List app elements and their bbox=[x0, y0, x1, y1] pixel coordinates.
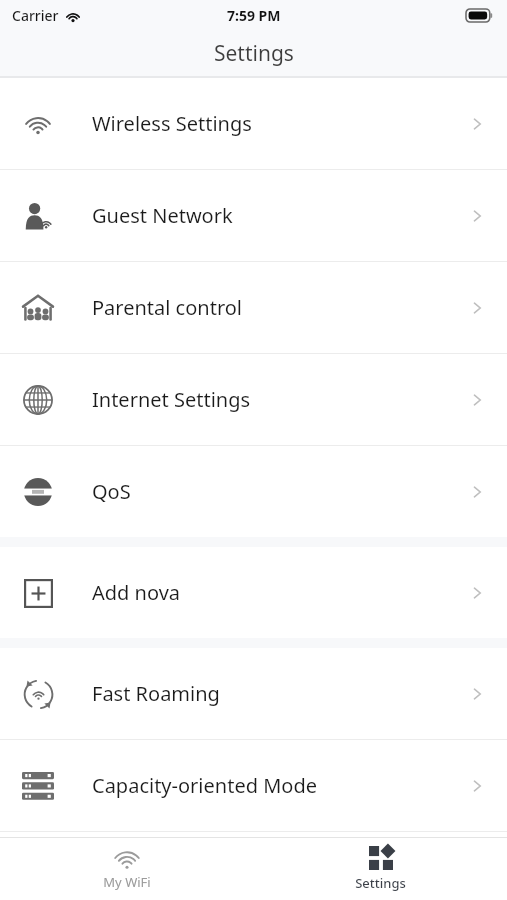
staticText: Settings bbox=[214, 39, 294, 68]
button[interactable]: My WiFi bbox=[0, 838, 253, 900]
staticText: Fast Roaming bbox=[92, 680, 469, 707]
staticText: Add nova bbox=[92, 579, 469, 606]
button[interactable]: Wireless Settings bbox=[0, 78, 507, 169]
button[interactable]: Guest Network bbox=[0, 170, 507, 261]
staticText: 7:59 PM bbox=[227, 6, 281, 25]
button[interactable]: Parental control bbox=[0, 262, 507, 353]
staticText: Parental control bbox=[92, 294, 469, 321]
staticText: QoS bbox=[92, 478, 469, 505]
staticText: My WiFi bbox=[103, 873, 151, 891]
button[interactable]: QoS bbox=[0, 446, 507, 537]
staticText: Guest Network bbox=[92, 202, 469, 229]
staticText: Settings bbox=[355, 874, 406, 892]
staticText: Wireless Settings bbox=[92, 110, 469, 137]
button[interactable]: Capacity-oriented Mode bbox=[0, 740, 507, 831]
button[interactable]: Add nova bbox=[0, 547, 507, 638]
staticText: Carrier bbox=[12, 6, 59, 25]
button[interactable]: Settings bbox=[253, 838, 507, 900]
button[interactable]: Internet Settings bbox=[0, 354, 507, 445]
staticText: Capacity-oriented Mode bbox=[92, 772, 469, 799]
staticText: Internet Settings bbox=[92, 386, 469, 413]
button[interactable]: Fast Roaming bbox=[0, 648, 507, 739]
